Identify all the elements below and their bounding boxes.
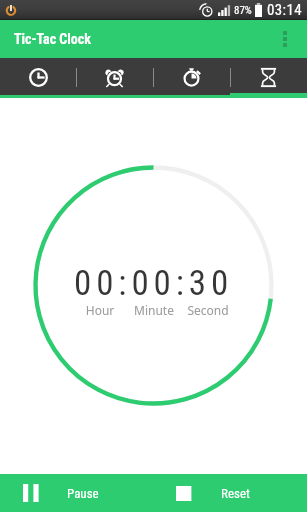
staticText: Second [181,302,235,318]
staticText: 87% [234,4,252,17]
staticText: Reset [221,486,250,501]
button[interactable]: Stopwatch [153,58,230,95]
button[interactable]: More options [269,20,307,58]
staticText: 00:00:30 [74,263,234,304]
staticText: Tic-Tac Clock [14,31,91,47]
button[interactable]: Pause [0,474,153,512]
button[interactable]: Alarm [76,58,153,95]
button[interactable]: Reset [153,474,307,512]
staticText: Minute [127,302,181,318]
button[interactable]: Timer [230,58,307,95]
staticText: 03:14 [267,1,303,19]
staticText: Hour [73,302,127,318]
button[interactable]: Clock [0,58,76,95]
staticText: Pause [67,486,99,501]
